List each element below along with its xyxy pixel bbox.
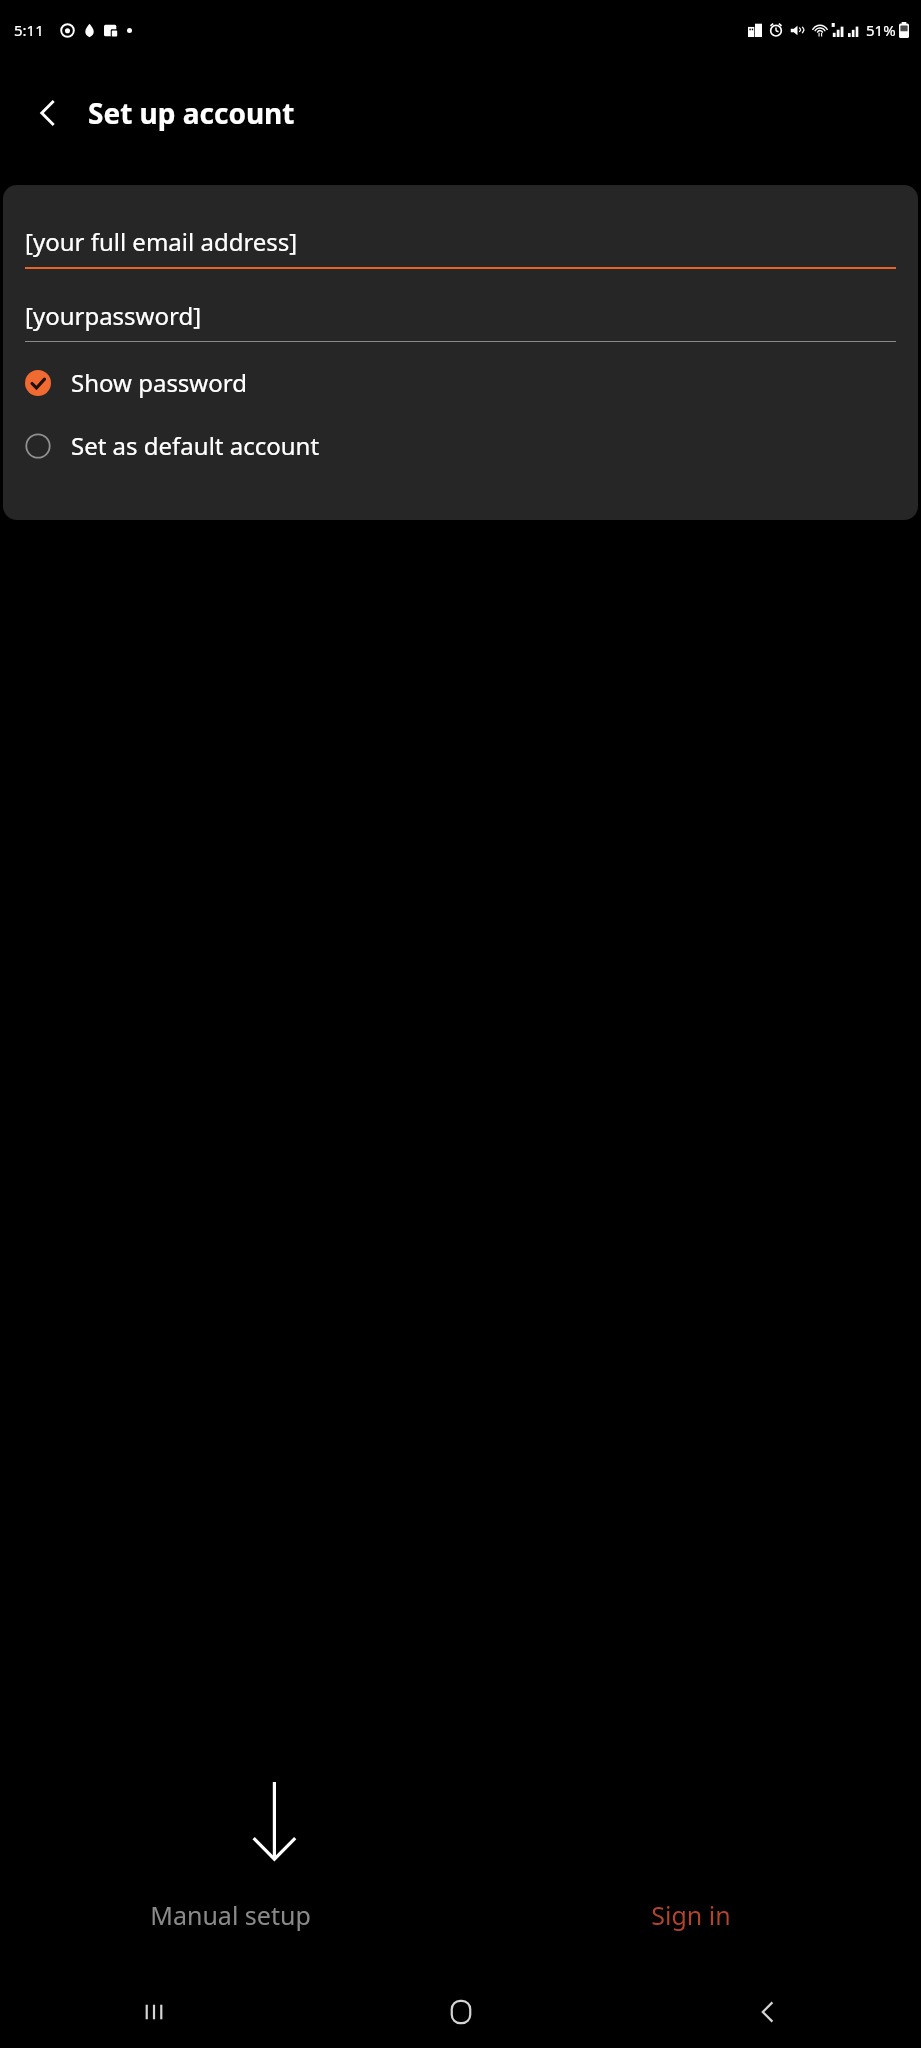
staticText: 51% bbox=[866, 20, 896, 40]
button[interactable]: Home bbox=[307, 1976, 614, 2048]
staticText: 5:11 bbox=[14, 20, 44, 40]
button[interactable]: Manual setup bbox=[0, 1884, 460, 1946]
staticText: Sign in bbox=[651, 1898, 731, 1932]
button[interactable]: Set as default account bbox=[25, 421, 896, 470]
button[interactable]: Back bbox=[614, 1976, 921, 2048]
staticText: [your full email address] bbox=[25, 225, 298, 258]
staticText: Show password bbox=[71, 366, 247, 399]
button[interactable]: Recents bbox=[0, 1976, 307, 2048]
button[interactable]: Back bbox=[20, 85, 76, 141]
staticText: [yourpassword] bbox=[25, 299, 202, 332]
button[interactable]: Sign in bbox=[460, 1884, 921, 1946]
staticText: Set as default account bbox=[71, 429, 320, 462]
staticText: Set up account bbox=[88, 94, 295, 132]
staticText: Manual setup bbox=[150, 1898, 311, 1932]
button[interactable]: Show password bbox=[25, 358, 896, 407]
